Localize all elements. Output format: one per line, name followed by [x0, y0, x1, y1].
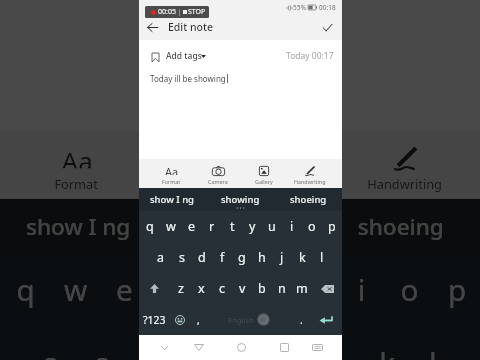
- button[interactable]: u: [262, 211, 282, 242]
- button[interactable]: v: [232, 273, 252, 304]
- staticText: t: [216, 270, 227, 310]
- button[interactable]: q: [139, 211, 160, 242]
- button[interactable]: show I ng: [139, 188, 206, 211]
- button[interactable]: Gallery: [242, 130, 351, 199]
- staticText: g: [238, 249, 246, 266]
- button[interactable]: showing: [159, 199, 320, 253]
- staticText: v: [239, 280, 246, 297]
- button[interactable]: f: [212, 242, 232, 273]
- button[interactable]: Gallery: [241, 159, 287, 188]
- button[interactable]: g: [220, 327, 268, 360]
- staticText: Camera: [208, 178, 228, 185]
- button[interactable]: Aa: [21, 130, 133, 199]
- button[interactable]: Hide keyboard: [139, 335, 189, 360]
- button[interactable]: o: [386, 253, 434, 327]
- staticText: z: [178, 280, 184, 297]
- button[interactable]: Enter: [311, 304, 342, 335]
- button[interactable]: c: [212, 273, 232, 304]
- staticText: k: [379, 343, 396, 360]
- staticText: Aa: [165, 164, 179, 175]
- button[interactable]: r: [149, 253, 197, 327]
- button[interactable]: u: [291, 253, 339, 327]
- button[interactable]: s: [171, 242, 192, 273]
- button[interactable]: Camera: [195, 159, 241, 188]
- button[interactable]: Screen recorder: [145, 6, 209, 18]
- button[interactable]: Emoji: [170, 304, 189, 335]
- button[interactable]: Home: [208, 335, 275, 360]
- button[interactable]: j: [315, 327, 363, 360]
- button[interactable]: .: [292, 304, 311, 335]
- button[interactable]: Recent apps: [275, 335, 293, 360]
- button[interactable]: n: [272, 273, 292, 304]
- button[interactable]: show I ng: [0, 199, 159, 253]
- staticText: o: [308, 218, 316, 235]
- staticText: i: [358, 270, 367, 310]
- staticText: Camera: [163, 175, 211, 192]
- button[interactable]: q: [0, 253, 50, 327]
- staticText: e: [188, 218, 196, 235]
- button[interactable]: t: [197, 253, 244, 327]
- button[interactable]: l: [410, 327, 457, 360]
- button[interactable]: h: [252, 242, 272, 273]
- button[interactable]: f: [173, 327, 220, 360]
- button[interactable]: z: [170, 273, 191, 304]
- button[interactable]: y: [244, 253, 291, 327]
- button[interactable]: ,: [189, 304, 208, 335]
- button[interactable]: Shift: [139, 273, 170, 304]
- button[interactable]: Back: [189, 335, 208, 360]
- button[interactable]: e: [181, 211, 202, 242]
- button[interactable]: k: [363, 327, 410, 360]
- button[interactable]: b: [252, 273, 272, 304]
- button[interactable]: r: [202, 211, 222, 242]
- staticText: 00:05: [158, 7, 176, 17]
- staticText: showing: [194, 211, 287, 242]
- button[interactable]: Backspace: [312, 273, 342, 304]
- button[interactable]: Handwriting: [287, 159, 333, 188]
- button[interactable]: t: [222, 211, 242, 242]
- button[interactable]: Handwriting: [351, 130, 460, 199]
- button[interactable]: m: [292, 273, 312, 304]
- button[interactable]: a: [150, 242, 171, 273]
- staticText: .: [300, 313, 303, 327]
- button[interactable]: p: [434, 253, 480, 327]
- button[interactable]: ?123: [139, 304, 170, 335]
- button[interactable]: Save note: [314, 14, 340, 40]
- button[interactable]: j: [272, 242, 292, 273]
- button[interactable]: d: [126, 327, 173, 360]
- staticText: u: [268, 218, 276, 235]
- button[interactable]: o: [302, 211, 322, 242]
- button[interactable]: Change keyboard: [293, 335, 342, 360]
- staticText: Format: [54, 175, 99, 192]
- button[interactable]: showing: [206, 188, 274, 211]
- button[interactable]: Back: [139, 14, 165, 40]
- staticText: Gallery: [275, 175, 318, 192]
- staticText: Handwriting: [294, 178, 326, 185]
- staticText: a: [43, 343, 62, 360]
- button[interactable]: e: [99, 253, 149, 327]
- button[interactable]: s: [76, 327, 126, 360]
- button[interactable]: d: [192, 242, 212, 273]
- button[interactable]: i: [282, 211, 302, 242]
- button[interactable]: w: [160, 211, 181, 242]
- button[interactable]: x: [191, 273, 212, 304]
- staticText: y: [249, 218, 256, 235]
- button[interactable]: Space: [208, 304, 292, 335]
- button[interactable]: y: [242, 211, 262, 242]
- button[interactable]: h: [268, 327, 315, 360]
- button[interactable]: k: [292, 242, 312, 273]
- button[interactable]: p: [322, 211, 342, 242]
- button[interactable]: i: [339, 253, 386, 327]
- button[interactable]: Aa: [148, 159, 195, 188]
- button[interactable]: Add tags: [152, 50, 207, 62]
- button[interactable]: shoeing: [320, 199, 480, 253]
- button[interactable]: a: [26, 327, 76, 360]
- button[interactable]: g: [232, 242, 252, 273]
- staticText: q: [16, 270, 35, 310]
- button[interactable]: w: [50, 253, 99, 327]
- button[interactable]: l: [312, 242, 332, 273]
- button[interactable]: shoeing: [274, 188, 342, 211]
- button[interactable]: Camera: [133, 130, 242, 199]
- staticText: l: [320, 249, 324, 266]
- staticText: show I ng: [26, 211, 133, 242]
